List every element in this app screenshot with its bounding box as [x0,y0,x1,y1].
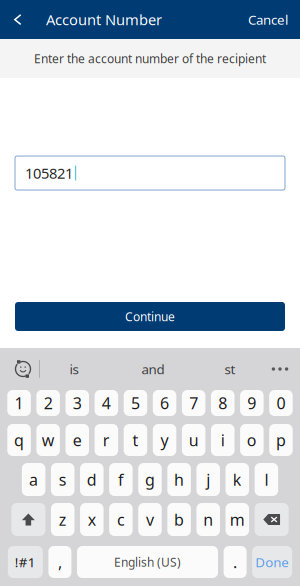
button[interactable]: 8 [211,390,234,416]
staticText: b [174,509,184,530]
button[interactable]: l [255,463,278,496]
button[interactable]: b [167,503,191,536]
staticText: 7 [189,392,198,414]
button[interactable]: Emoji [7,353,39,385]
staticText: st [224,360,235,378]
staticText: and [141,360,164,378]
staticText: x [88,509,96,530]
staticText: g [145,469,155,490]
button[interactable]: n [196,503,220,536]
staticText: 2 [44,392,53,414]
staticText: n [203,509,213,530]
button[interactable]: , [48,546,71,578]
staticText: 0 [276,392,285,414]
staticText: 4 [102,392,111,414]
button[interactable]: Continue [15,302,285,331]
staticText: o [247,429,257,451]
button[interactable]: v [138,503,162,536]
button[interactable]: c [109,503,133,536]
button[interactable]: o [240,424,264,456]
button[interactable]: j [196,463,220,496]
staticText: h [174,469,184,490]
staticText: is [69,360,78,378]
staticText: 105821 [25,163,73,183]
staticText: y [161,429,169,451]
button[interactable]: d [80,463,103,496]
button[interactable]: Backspace [255,503,289,536]
staticText: , [58,551,62,573]
staticText: v [146,509,154,530]
button[interactable]: t [124,424,147,456]
button[interactable]: w [36,424,60,456]
button[interactable]: e [65,424,89,456]
button[interactable]: . [224,546,247,578]
staticText: m [230,509,245,530]
button[interactable]: Done [252,546,292,578]
staticText: Cancel [248,11,288,28]
button[interactable]: u [182,424,205,456]
button[interactable]: is [44,354,104,384]
staticText: k [233,469,242,490]
button[interactable]: 5 [124,390,147,416]
button[interactable]: z [51,503,74,536]
staticText: Enter the account number of the recipien… [34,50,266,66]
button[interactable]: Account Number [36,10,162,29]
staticText: w [42,429,55,451]
staticText: s [59,469,67,490]
button[interactable]: 4 [95,390,118,416]
button[interactable]: s [51,463,74,496]
staticText: 6 [160,392,169,414]
button[interactable]: 7 [182,390,205,416]
button[interactable]: Cancel [248,0,300,39]
button[interactable]: 0 [269,390,293,416]
button[interactable]: f [109,463,133,496]
button[interactable]: More options [264,355,296,383]
button[interactable]: p [269,424,293,456]
button[interactable]: Shift [11,503,45,536]
button[interactable]: q [7,424,31,456]
staticText: e [73,429,82,451]
button[interactable]: 9 [240,390,264,416]
button[interactable]: 3 [65,390,89,416]
staticText: . [233,551,237,573]
button[interactable]: st [200,354,260,384]
staticText: q [14,429,24,451]
button[interactable]: Back [0,0,36,39]
button[interactable]: y [153,424,176,456]
button[interactable]: x [80,503,103,536]
staticText: t [132,429,138,451]
staticText: 1 [15,392,24,414]
staticText: r [103,429,110,451]
staticText: Done [255,553,289,571]
staticText: 9 [247,392,256,414]
button[interactable]: 2 [36,390,60,416]
staticText: p [276,429,286,451]
button[interactable]: h [167,463,191,496]
staticText: c [117,509,125,530]
button[interactable]: i [211,424,234,456]
staticText: u [189,429,199,451]
button[interactable]: English (US) [77,546,218,578]
staticText: j [206,469,210,490]
staticText: !#1 [15,553,36,571]
staticText: Account Number [46,10,162,29]
staticText: Continue [125,308,175,324]
button[interactable]: !#1 [8,546,43,578]
button[interactable]: 6 [153,390,176,416]
staticText: z [59,509,67,530]
staticText: l [264,469,268,490]
staticText: English (US) [114,554,181,570]
staticText: 3 [73,392,82,414]
staticText: 8 [218,392,227,414]
button[interactable]: r [95,424,118,456]
staticText: d [87,469,97,490]
staticText: i [221,429,225,451]
button[interactable]: k [225,463,249,496]
button[interactable]: and [123,354,183,384]
staticText: 5 [131,392,140,414]
button[interactable]: a [22,463,45,496]
button[interactable]: 1 [7,390,31,416]
button[interactable]: m [225,503,249,536]
staticText: a [29,469,38,490]
button[interactable]: g [138,463,162,496]
